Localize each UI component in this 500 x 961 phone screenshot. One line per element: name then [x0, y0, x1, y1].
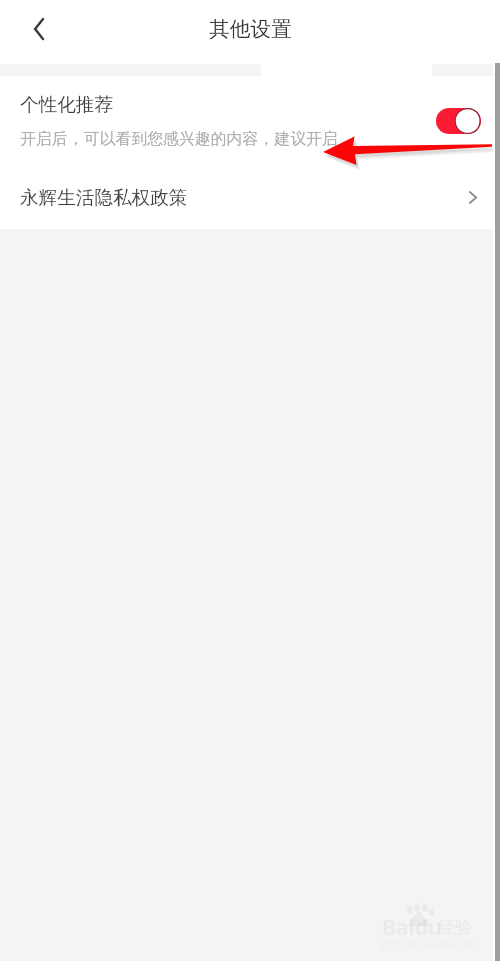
- button[interactable]: 个性化推荐: [0, 76, 420, 170]
- button[interactable]: Back: [21, 11, 57, 47]
- staticText: 经验: [438, 917, 472, 938]
- staticText: 个性化推荐: [20, 93, 113, 116]
- button[interactable]: 永辉生活隐私权政策: [0, 170, 500, 229]
- button[interactable]: Toggle personalised recommendations: [436, 108, 481, 134]
- staticText: 永辉生活隐私权政策: [20, 186, 188, 209]
- staticText: 开启后，可以看到您感兴趣的内容，建议开启: [20, 129, 338, 149]
- staticText: 其他设置: [209, 16, 292, 42]
- staticText: Baidu: [382, 913, 442, 942]
